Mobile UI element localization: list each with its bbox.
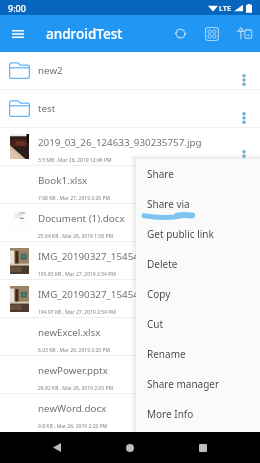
button[interactable]: IMG_20190327_154541.jpg	[0, 280, 260, 317]
staticText: Share	[147, 167, 174, 181]
button[interactable]: test	[0, 90, 260, 127]
staticText: 194.97 KB , Mar 27, 2019 2:54 PM	[38, 309, 116, 316]
staticText: LTE	[219, 3, 232, 13]
button[interactable]: Delete	[136, 249, 260, 279]
button[interactable]: Book1.xlsx	[0, 166, 260, 203]
staticText: 3.5 MB , Mar 26, 2019 12:46 PM	[38, 157, 112, 164]
button[interactable]: More options	[228, 128, 260, 165]
staticText: More Info	[147, 407, 194, 421]
button[interactable]: Copy	[136, 279, 260, 309]
button[interactable]: IMG_20190327_154540.jpg	[0, 242, 260, 279]
button[interactable]: Home	[117, 432, 143, 463]
staticText: androidTest	[46, 25, 123, 43]
staticText: Share via	[147, 197, 190, 211]
button[interactable]: Recents	[190, 432, 216, 463]
button[interactable]: Back	[44, 432, 70, 463]
staticText: Delete	[147, 257, 178, 271]
button[interactable]: Share	[136, 159, 260, 189]
button[interactable]: More options	[228, 90, 260, 127]
button[interactable]: newWord.docx	[0, 394, 260, 431]
staticText: 26.92 KB , Mar 26, 2019 2:20 PM	[38, 385, 113, 392]
staticText: 9.8 KB , Mar 26, 2019 2:20 PM	[38, 423, 108, 430]
staticText: 25.64 KB , Mar 26, 2019 1:58 PM	[38, 233, 113, 240]
staticText: 2019_03_26_124633_930235757.jpg	[38, 136, 202, 149]
button[interactable]: Share via	[136, 189, 260, 219]
staticText: test	[38, 102, 56, 115]
button[interactable]: Rename	[136, 339, 260, 369]
staticText: 195.83 KB , Mar 27, 2019 2:54 PM	[38, 271, 116, 278]
staticText: Rename	[147, 347, 186, 361]
button[interactable]: Grid view	[196, 15, 228, 52]
button[interactable]: Cut	[136, 309, 260, 339]
staticText: newExcel.xlsx	[38, 326, 101, 339]
button[interactable]: 2019_03_26_124633_930235757.jpg	[0, 128, 260, 165]
staticText: IMG_20190327_154540.jpg	[38, 250, 162, 263]
staticText: Get public link	[147, 227, 214, 241]
button[interactable]: Upload	[228, 15, 260, 52]
staticText: IMG_20190327_154541.jpg	[38, 288, 162, 301]
staticText: Book1.xlsx	[38, 174, 88, 187]
staticText: 7.98 KB , Mar 27, 2019 2:26 PM	[38, 195, 111, 202]
button[interactable]: Sync	[164, 15, 196, 52]
button[interactable]: More Info	[136, 399, 260, 429]
button[interactable]: new2	[0, 52, 260, 89]
staticText: Share manager	[147, 377, 220, 391]
staticText: Document (1).docx	[38, 212, 125, 225]
button[interactable]: More options	[228, 52, 260, 89]
button[interactable]: newPower.pptx	[0, 356, 260, 393]
staticText: 6.03 KB , Mar 26, 2019 2:20 PM	[38, 347, 111, 354]
staticText: newWord.docx	[38, 402, 107, 415]
button[interactable]: Document (1).docx	[0, 204, 260, 241]
staticText: Cut	[147, 317, 164, 331]
staticText: 9:00	[8, 2, 26, 14]
button[interactable]: Navigation menu	[4, 15, 32, 52]
button[interactable]: Get public link	[136, 219, 260, 249]
staticText: new2	[38, 64, 63, 77]
staticText: newPower.pptx	[38, 364, 108, 377]
button[interactable]: Share manager	[136, 369, 260, 399]
button[interactable]: newExcel.xlsx	[0, 318, 260, 355]
staticText: Copy	[147, 287, 171, 301]
